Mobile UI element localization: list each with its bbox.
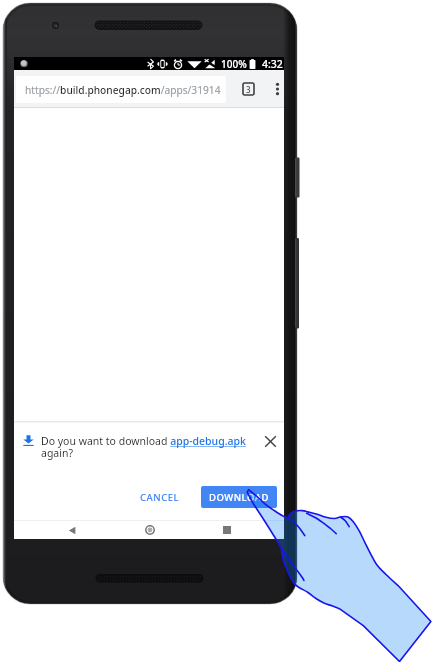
button[interactable]: https://build.phonegap.com/apps/31914 xyxy=(16,76,226,103)
button[interactable]: Recents xyxy=(217,521,237,539)
staticText: https://build.phonegap.com/apps/31914 xyxy=(25,83,221,97)
staticText: CANCEL xyxy=(140,491,180,504)
button[interactable]: More options xyxy=(271,82,284,96)
button[interactable]: CANCEL xyxy=(131,486,189,508)
staticText: 100% xyxy=(221,57,247,70)
button[interactable]: Back xyxy=(62,521,82,539)
button[interactable]: Home xyxy=(140,521,160,539)
staticText: Do you want to download app-debug.apk ag… xyxy=(41,434,258,460)
button[interactable]: DOWNLOAD xyxy=(201,486,277,508)
staticText: 4:32 xyxy=(262,57,283,70)
button[interactable]: Close xyxy=(264,435,277,448)
staticText: DOWNLOAD xyxy=(209,491,269,504)
button[interactable]: Tabs: 3 xyxy=(241,82,255,96)
staticText: 3 xyxy=(246,84,251,95)
